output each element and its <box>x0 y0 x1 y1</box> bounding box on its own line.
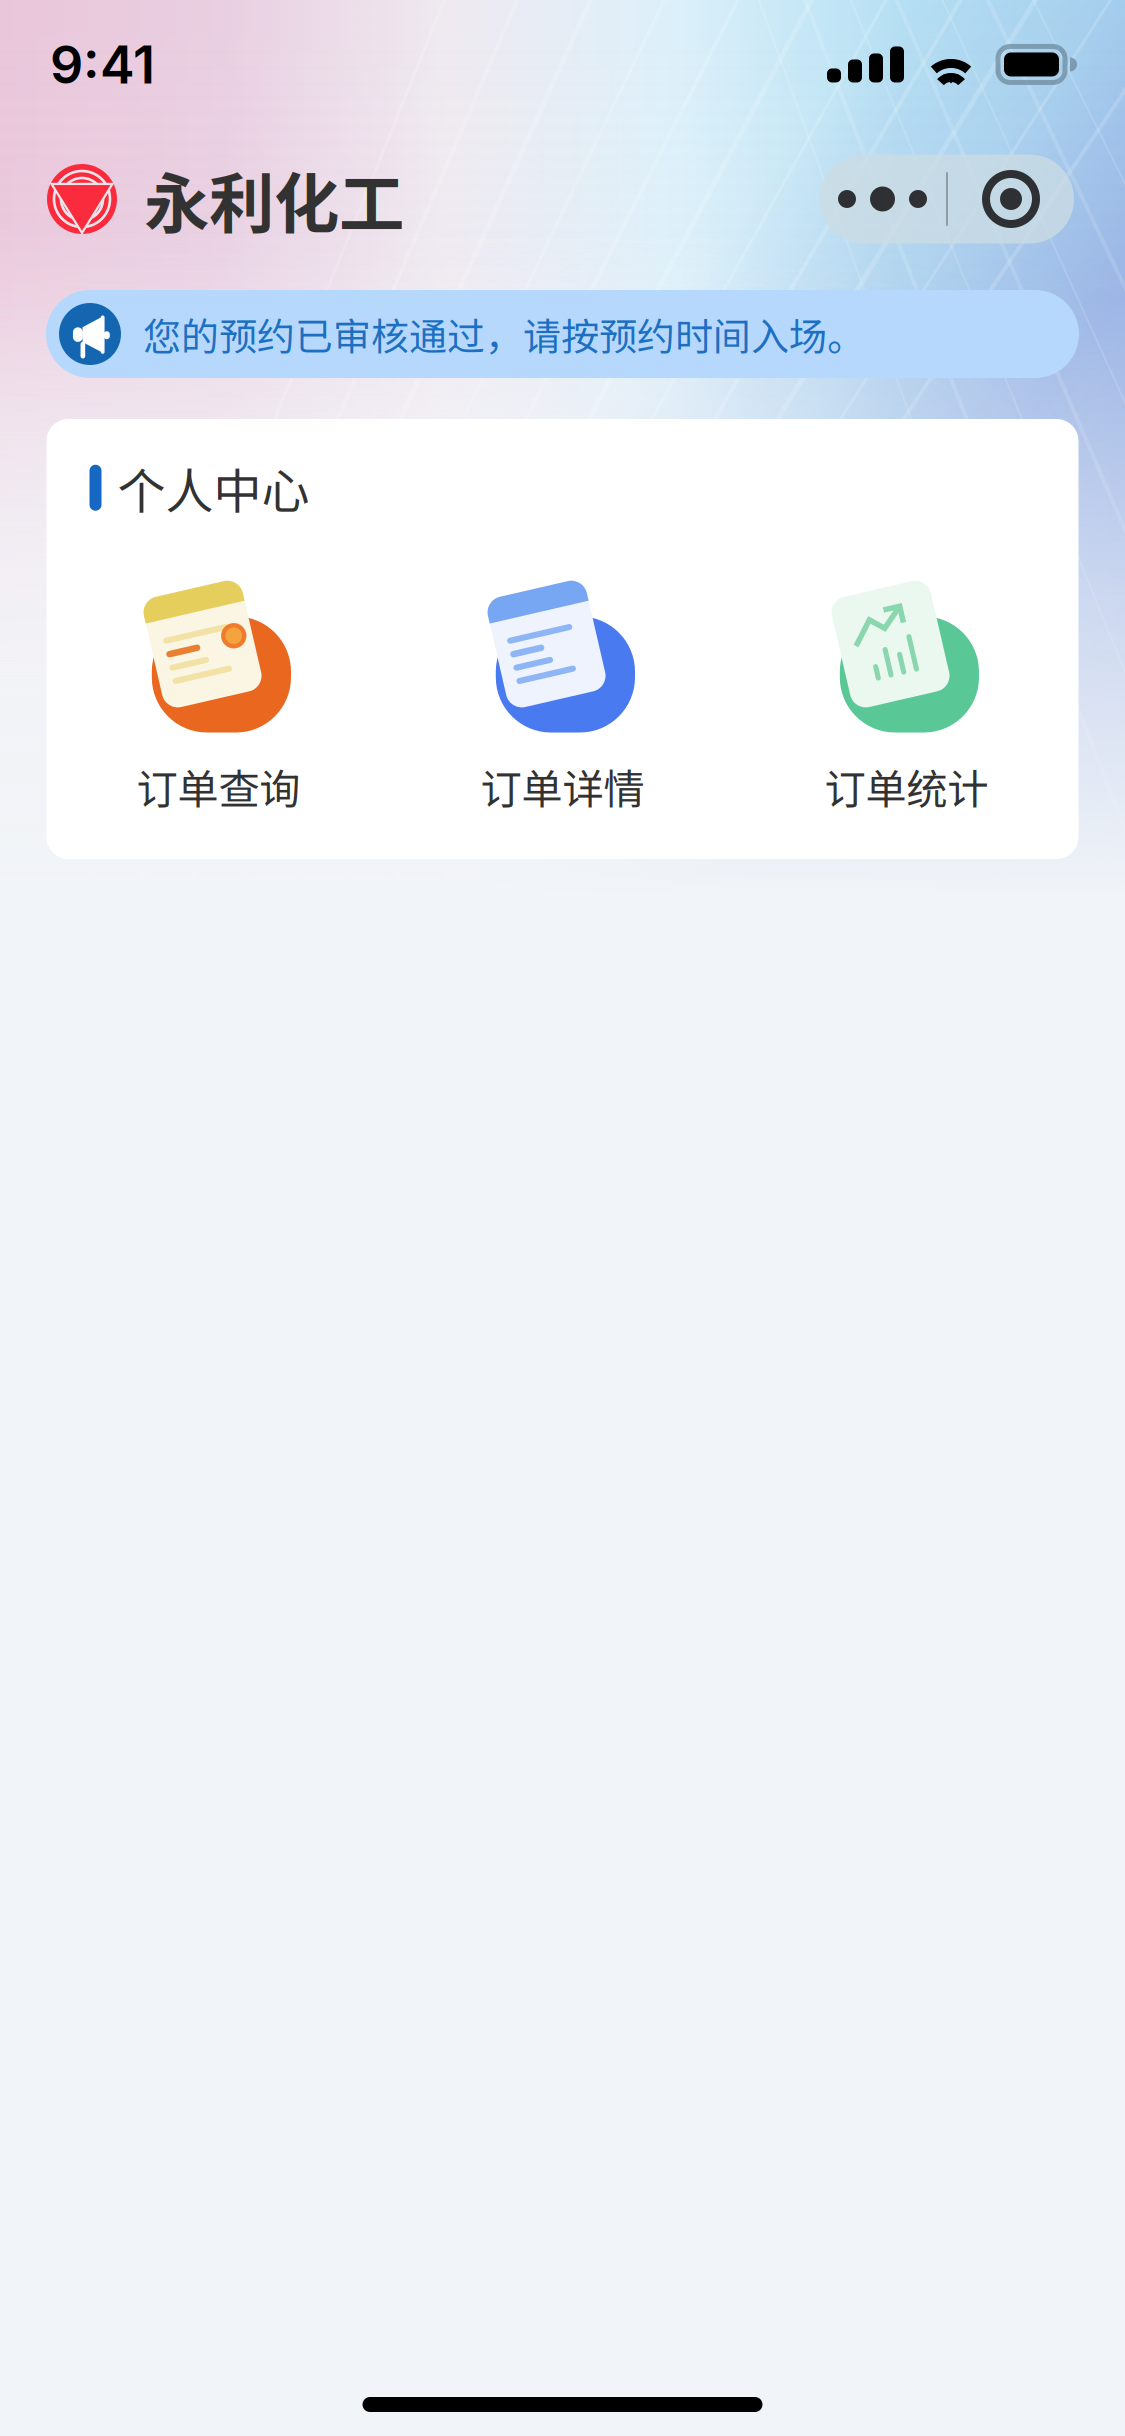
button[interactable]: 订单统计 <box>734 587 1078 816</box>
staticText: 订单统计 <box>824 756 988 816</box>
button[interactable]: Close mini program <box>948 154 1074 243</box>
staticText: 您的预约已审核通过，请按预约时间入场。 <box>143 306 865 361</box>
button[interactable]: 订单详情 <box>390 587 734 816</box>
button[interactable]: 订单查询 <box>46 587 390 816</box>
staticText: 个人中心 <box>117 453 309 522</box>
button[interactable]: More options <box>819 154 946 243</box>
staticText: 9:41 <box>50 33 155 96</box>
staticText: 永利化工 <box>144 152 404 246</box>
staticText: 订单详情 <box>480 756 644 816</box>
staticText: 订单查询 <box>136 756 300 816</box>
